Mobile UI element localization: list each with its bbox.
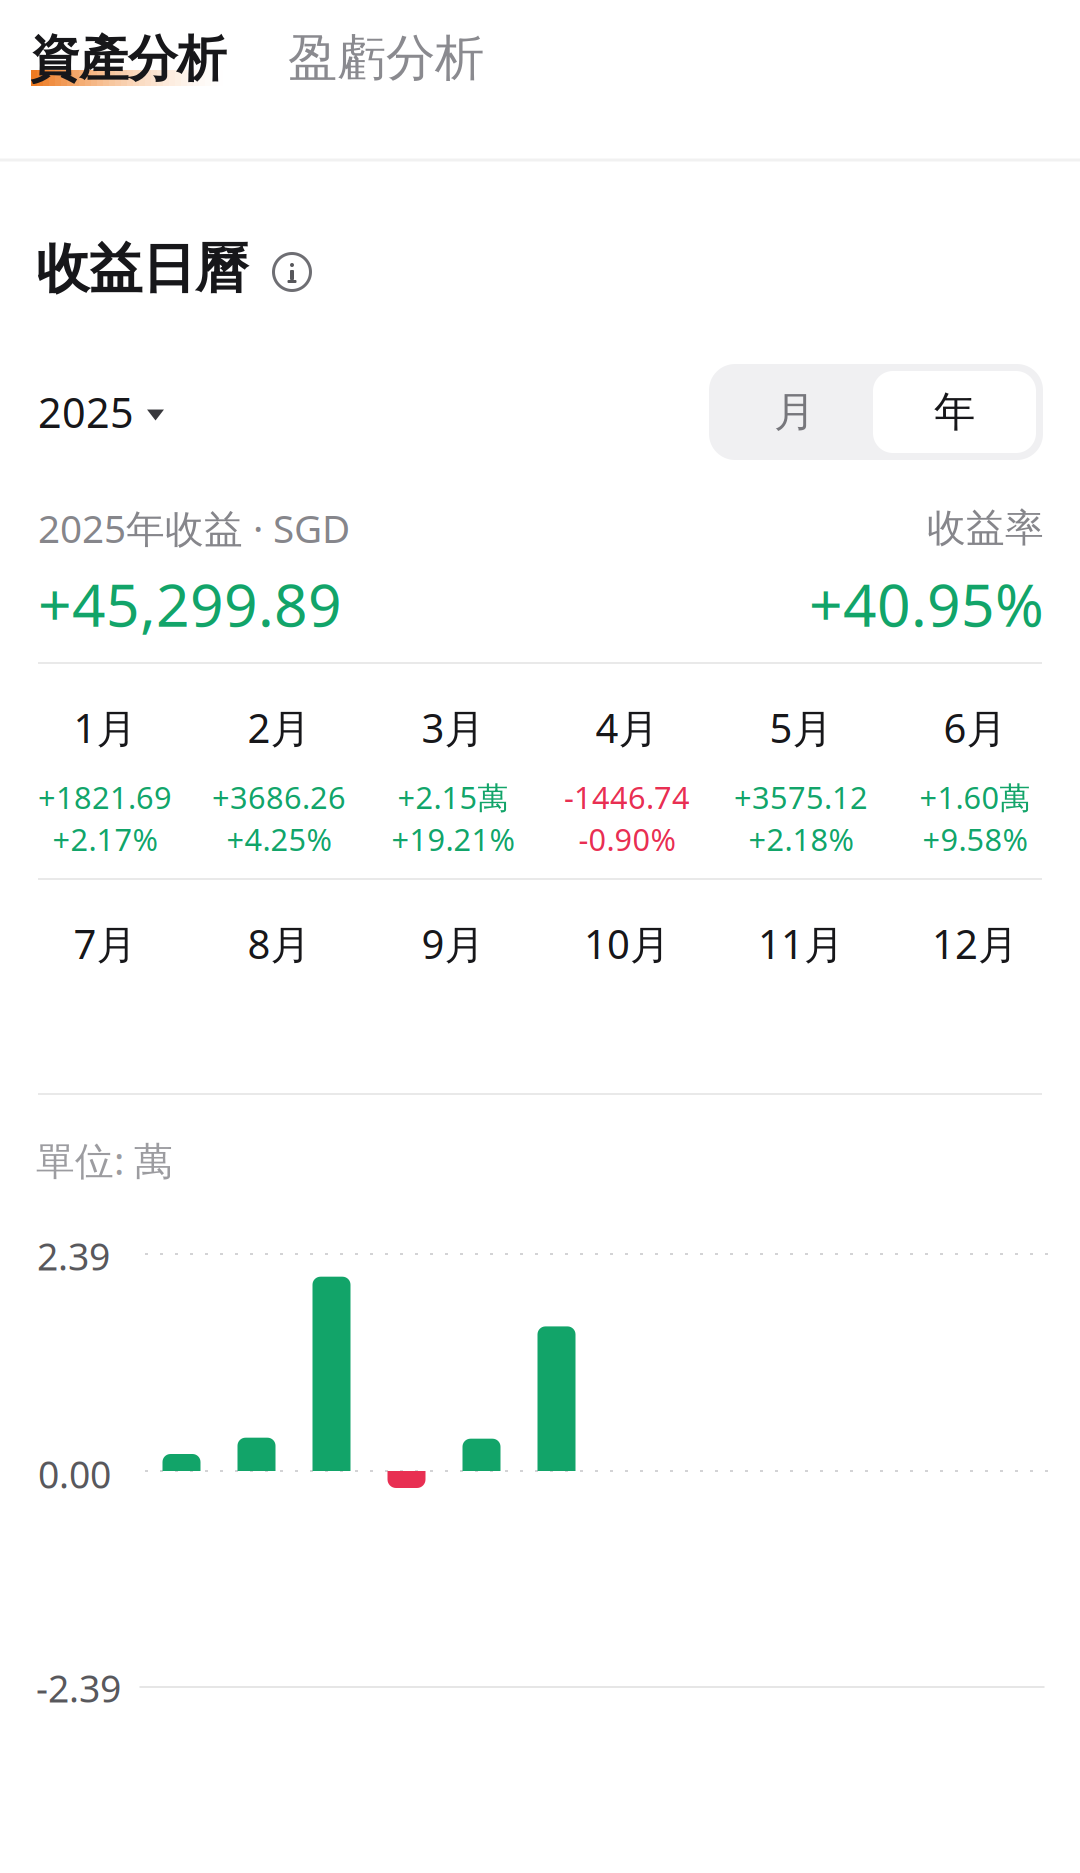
button[interactable]: 4月 <box>540 663 714 877</box>
button[interactable]: Info <box>269 249 315 295</box>
button[interactable]: 5月 <box>714 663 888 877</box>
staticText: -2.39 <box>36 1663 121 1713</box>
staticText: 7月 <box>73 917 136 970</box>
staticText: 4月 <box>595 701 658 754</box>
staticText: 6月 <box>943 701 1006 754</box>
staticText: 10月 <box>584 917 670 970</box>
staticText: 2025 <box>38 385 134 439</box>
button[interactable]: 1月 <box>18 663 192 877</box>
staticText: 0.00 <box>38 1449 111 1499</box>
button[interactable]: 3月 <box>366 663 540 877</box>
staticText: +45,299.89 <box>38 565 342 643</box>
button[interactable]: 11月 <box>714 879 888 1093</box>
staticText: +3575.12 <box>734 777 868 817</box>
button[interactable]: 6月 <box>888 663 1062 877</box>
button[interactable]: 8月 <box>192 879 366 1093</box>
button[interactable]: 10月 <box>540 879 714 1093</box>
staticText: 收益日曆 <box>36 236 248 302</box>
staticText: +19.21% <box>391 819 514 859</box>
button[interactable]: 2025 <box>38 374 168 450</box>
staticText: +2.17% <box>52 819 157 859</box>
staticText: -1446.74 <box>564 777 690 817</box>
staticText: +40.95% <box>809 565 1044 643</box>
staticText: 單位: 萬 <box>36 1134 173 1186</box>
staticText: +2.18% <box>748 819 853 859</box>
staticText: 11月 <box>758 917 844 970</box>
staticText: -0.90% <box>578 819 675 859</box>
staticText: 5月 <box>769 701 832 754</box>
staticText: +1.60萬 <box>919 777 1030 817</box>
button[interactable]: 2月 <box>192 663 366 877</box>
button[interactable]: 盈虧分析 <box>288 29 488 87</box>
button[interactable]: 資產分析 <box>30 30 236 88</box>
staticText: +4.25% <box>226 819 331 859</box>
staticText: 收益率 <box>927 504 1044 552</box>
staticText: +2.15萬 <box>397 777 508 817</box>
staticText: 1月 <box>73 701 136 754</box>
staticText: 盈虧分析 <box>288 28 484 88</box>
button[interactable]: 月 <box>716 371 873 453</box>
staticText: +9.58% <box>922 819 1027 859</box>
button[interactable]: 9月 <box>366 879 540 1093</box>
staticText: +1821.69 <box>38 777 172 817</box>
staticText: 2025年收益 · SGD <box>38 502 350 554</box>
staticText: 2.39 <box>37 1231 110 1281</box>
staticText: +3686.26 <box>212 777 346 817</box>
staticText: 3月 <box>421 701 484 754</box>
button[interactable]: 12月 <box>888 879 1062 1093</box>
staticText: 8月 <box>247 917 310 970</box>
staticText: 2月 <box>247 701 310 754</box>
staticText: 9月 <box>421 917 484 970</box>
button[interactable]: 年 <box>873 371 1036 453</box>
button[interactable]: 7月 <box>18 879 192 1093</box>
staticText: 12月 <box>932 917 1018 970</box>
staticText: 年 <box>934 387 975 437</box>
staticText: 月 <box>774 387 815 437</box>
staticText: 資產分析 <box>30 29 226 89</box>
